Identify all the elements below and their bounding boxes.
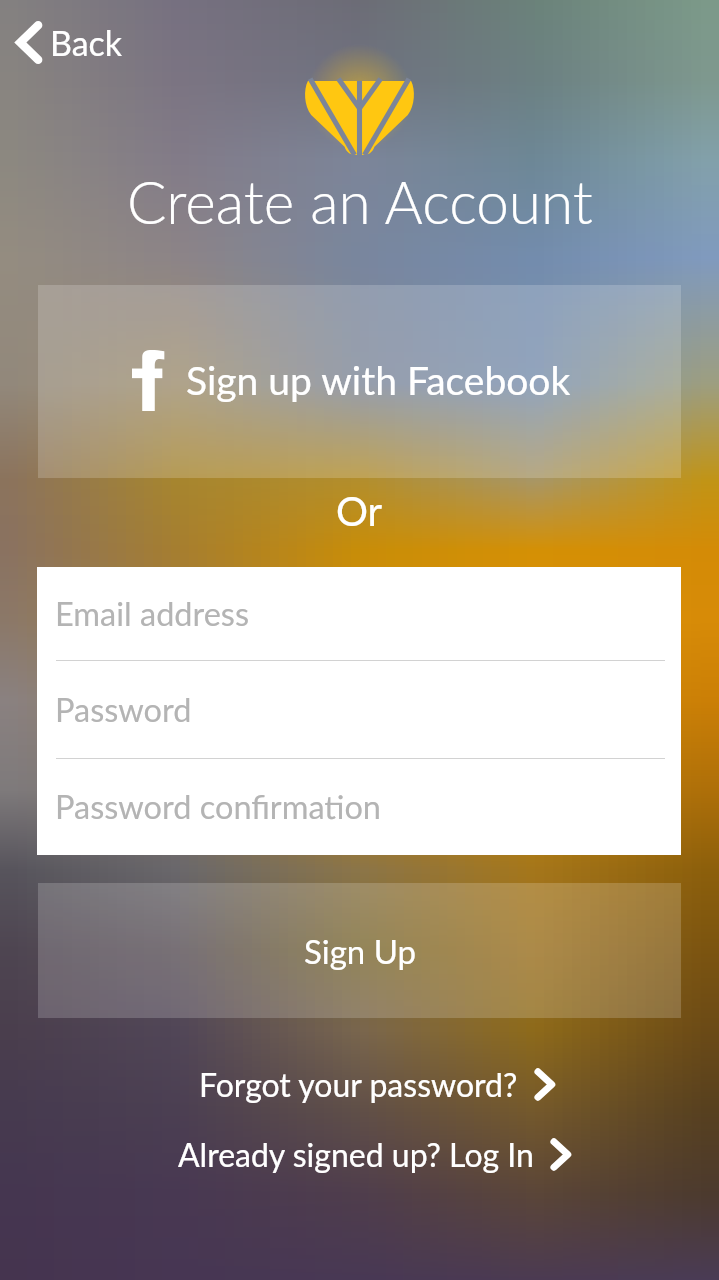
button[interactable]: Password — [37, 661, 681, 758]
button[interactable]: Back — [9, 14, 133, 71]
staticText: Sign Up — [304, 931, 416, 971]
staticText: Already signed up? Log In — [178, 1135, 534, 1173]
button[interactable]: Sign up with Facebook — [38, 285, 681, 478]
other: Go — [535, 1069, 556, 1100]
staticText: Password confirmation — [55, 787, 381, 826]
staticText: Or — [336, 487, 383, 535]
staticText: Back — [50, 22, 123, 63]
button[interactable]: Password confirmation — [37, 759, 681, 854]
button[interactable]: Already signed up? Log In — [164, 1129, 574, 1183]
button[interactable]: Forgot your password? — [185, 1059, 558, 1113]
staticText: Create an Account — [127, 166, 593, 236]
staticText: Sign up with Facebook — [186, 357, 571, 404]
other: Go — [551, 1139, 572, 1170]
staticText: Email address — [55, 594, 250, 633]
other: Back — [17, 22, 41, 63]
button[interactable]: Email address — [37, 567, 681, 660]
staticText: Password — [55, 690, 192, 729]
button[interactable]: Sign Up — [38, 883, 681, 1018]
staticText: Forgot your password? — [199, 1065, 518, 1103]
